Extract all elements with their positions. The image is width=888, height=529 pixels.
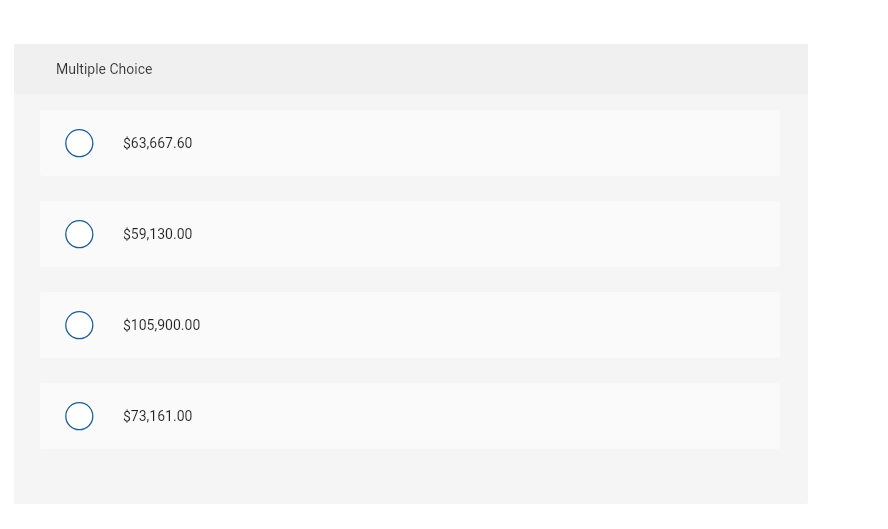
staticText: $73,161.00 xyxy=(123,408,193,424)
staticText: $63,667.60 xyxy=(123,135,193,151)
button[interactable]: Answer option $59,130.00 xyxy=(40,201,780,267)
staticText: $105,900.00 xyxy=(123,317,201,333)
button[interactable]: Answer option $73,161.00 xyxy=(40,383,780,449)
staticText: $59,130.00 xyxy=(123,226,193,242)
button[interactable]: Answer option $63,667.60 xyxy=(40,110,780,176)
button[interactable]: Answer option $105,900.00 xyxy=(40,292,780,358)
staticText: Multiple Choice xyxy=(56,61,153,77)
